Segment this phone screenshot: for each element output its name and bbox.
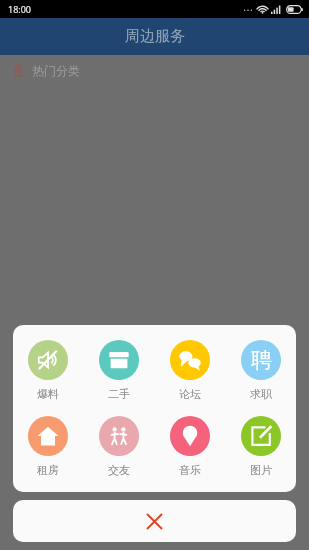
staticText: 爆料 xyxy=(37,387,59,401)
button[interactable]: 论坛 xyxy=(154,338,225,403)
staticText: 图片 xyxy=(250,463,272,477)
button[interactable]: Close xyxy=(13,500,296,542)
staticText: 交友 xyxy=(108,463,130,477)
staticText: 音乐 xyxy=(179,463,201,477)
staticText: 求职 xyxy=(250,387,272,401)
button[interactable]: 聘 xyxy=(225,338,296,403)
button[interactable]: 交友 xyxy=(83,414,154,479)
staticText: 热门分类 xyxy=(32,63,80,78)
button[interactable]: 二手 xyxy=(83,338,154,403)
staticText: 18:00 xyxy=(8,3,32,15)
staticText: 租房 xyxy=(37,463,59,477)
button[interactable]: 图片 xyxy=(225,414,296,479)
button[interactable]: 音乐 xyxy=(154,414,225,479)
staticText: 二手 xyxy=(108,387,130,401)
staticText: 周边服务 xyxy=(125,27,185,46)
button[interactable]: 热门分类 xyxy=(0,55,309,85)
button[interactable]: 爆料 xyxy=(13,338,83,403)
staticText: 聘 xyxy=(251,347,272,373)
button[interactable]: 租房 xyxy=(13,414,83,479)
staticText: 论坛 xyxy=(179,387,201,401)
